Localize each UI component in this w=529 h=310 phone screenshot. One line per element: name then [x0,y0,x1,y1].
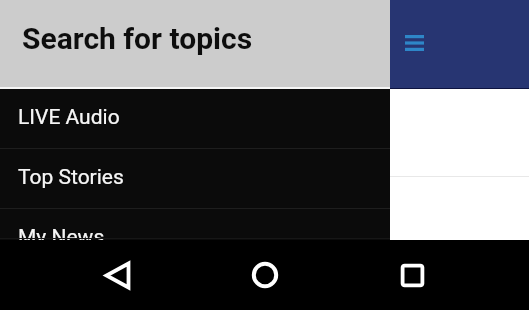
button[interactable]: Recent apps [388,251,436,299]
button[interactable]: My News [0,209,390,240]
button[interactable]: Topic suggestion [0,177,529,240]
staticText: My News [18,225,105,240]
staticText: Search for topics [22,21,253,56]
button[interactable]: Top Stories [0,149,390,209]
button[interactable]: LIVE Audio [0,89,390,149]
button[interactable]: Menu [397,26,431,60]
button[interactable]: Home [241,251,289,299]
button[interactable]: Topic suggestion [0,89,529,176]
staticText: Top Stories [18,165,124,190]
button[interactable]: Back [93,251,141,299]
staticText: LIVE Audio [18,105,120,130]
